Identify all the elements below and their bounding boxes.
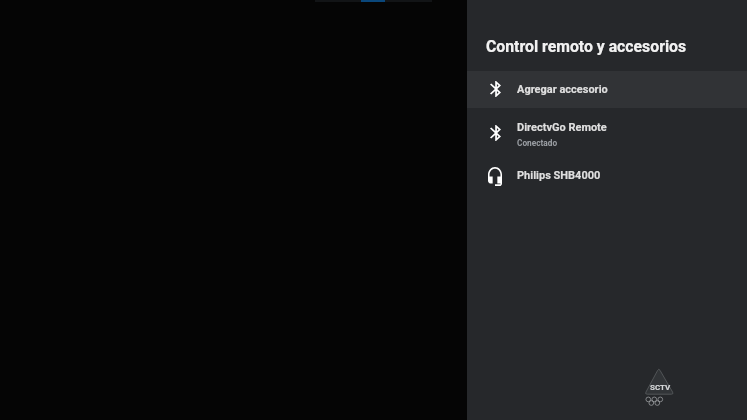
button[interactable]: Bluetooth — [467, 108, 747, 156]
staticText: Conectado — [517, 138, 558, 148]
other: Bluetooth — [490, 125, 501, 141]
staticText: DirectvGo Remote — [517, 121, 607, 134]
button[interactable]: Bluetooth — [467, 71, 747, 108]
staticText: Control remoto y accesorios — [486, 37, 687, 56]
staticText: Agregar accesorio — [517, 83, 608, 96]
staticText: SCTV — [650, 383, 671, 392]
button[interactable]: Headset — [467, 156, 747, 194]
staticText: Philips SHB4000 — [517, 169, 601, 182]
other: Headset — [488, 167, 502, 186]
other: Bluetooth — [490, 81, 501, 97]
